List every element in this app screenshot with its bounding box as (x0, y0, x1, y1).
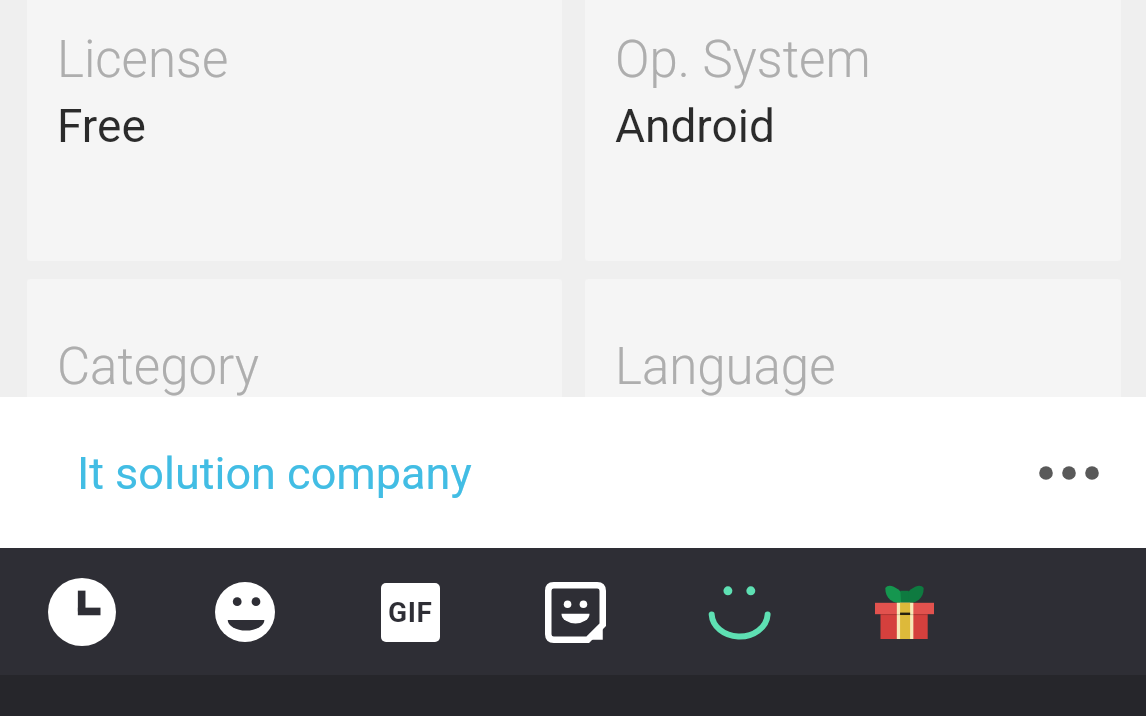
staticText: Android (615, 99, 775, 153)
button[interactable]: It solution company (62, 435, 487, 512)
button[interactable]: Emoji (193, 560, 297, 664)
button[interactable]: Category (27, 279, 562, 568)
button[interactable]: More options (1019, 423, 1119, 523)
staticText: Category (57, 337, 259, 397)
button[interactable]: Op. System (585, 0, 1121, 261)
button[interactable]: Bitmoji (687, 560, 791, 664)
staticText: GIF (388, 596, 433, 629)
staticText: Free (57, 99, 146, 153)
staticText: It solution company (77, 447, 472, 500)
button[interactable]: License (27, 0, 562, 261)
button[interactable]: Language (585, 279, 1121, 568)
button[interactable]: GIF (358, 560, 462, 664)
button[interactable]: Recent emoji (30, 560, 134, 664)
button[interactable]: Stickers (523, 560, 627, 664)
staticText: Language (615, 337, 836, 397)
staticText: Op. System (615, 30, 871, 90)
staticText: License (57, 30, 229, 90)
button[interactable]: Gifts (850, 560, 954, 664)
